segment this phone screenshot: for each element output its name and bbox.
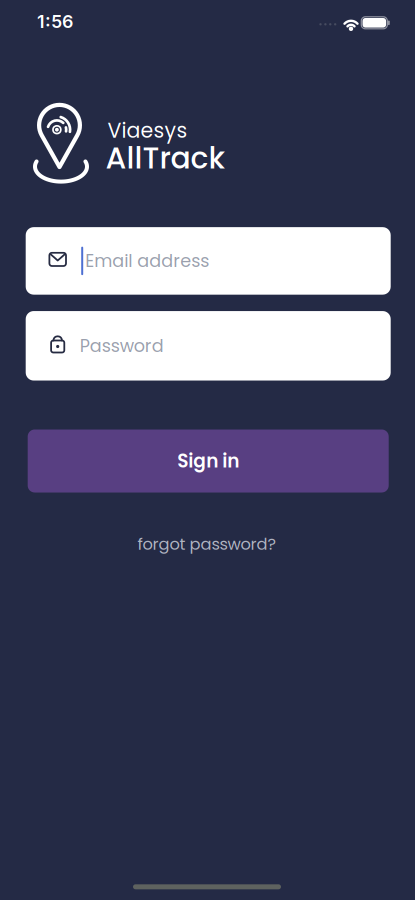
staticText: AllTrack — [105, 137, 225, 179]
staticText: forgot password? — [137, 533, 276, 555]
button[interactable]: forgot password? — [137, 533, 276, 555]
staticText: Sign in — [177, 448, 239, 474]
staticText: Email address — [85, 249, 209, 273]
button[interactable]: Password — [26, 311, 391, 381]
button[interactable]: Email address — [26, 227, 391, 295]
button[interactable]: Sign in — [28, 429, 389, 492]
staticText: Viaesys — [107, 116, 187, 145]
staticText: Password — [80, 333, 164, 358]
staticText: 1:56 — [37, 11, 73, 32]
